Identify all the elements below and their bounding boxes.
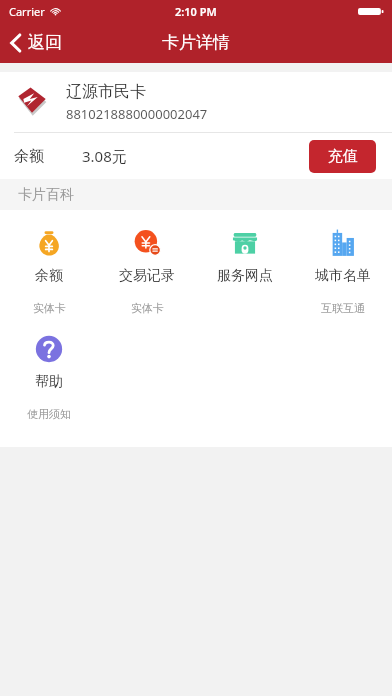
button[interactable]: 帮助 <box>0 332 98 423</box>
button[interactable]: 返回 <box>0 22 74 63</box>
staticText: 城市名单 <box>315 267 371 285</box>
button[interactable]: 充值 <box>309 140 376 173</box>
staticText: 8810218880000002047 <box>66 105 208 123</box>
staticText: 服务网点 <box>217 267 273 285</box>
staticText: 返回 <box>28 32 62 53</box>
staticText: 卡片详情 <box>162 32 230 53</box>
staticText: 3.08元 <box>82 146 127 166</box>
other: 交易记录 <box>133 229 161 257</box>
staticText: 余额 <box>35 267 63 285</box>
button[interactable]: 服务网点 <box>196 226 294 318</box>
staticText: 实体卡 <box>33 301 66 315</box>
staticText: 实体卡 <box>131 301 164 315</box>
staticText: 互联互通 <box>321 301 365 315</box>
other: 余额 <box>35 229 63 257</box>
other: 帮助 <box>35 335 63 363</box>
staticText: 帮助 <box>35 373 63 391</box>
other: 城市名单 <box>329 229 357 257</box>
button[interactable]: 辽源市民卡 <box>0 72 392 132</box>
staticText: 余额 <box>14 147 44 166</box>
staticText: 交易记录 <box>119 267 175 285</box>
other: 服务网点 <box>231 229 259 257</box>
button[interactable]: 城市名单 <box>294 226 392 317</box>
staticText: 使用须知 <box>27 407 71 421</box>
staticText: 卡片百科 <box>18 186 74 204</box>
button[interactable]: 余额 <box>0 226 98 317</box>
button[interactable]: 交易记录 <box>98 226 196 317</box>
staticText: 充值 <box>328 147 358 166</box>
staticText: Carrier <box>9 4 45 19</box>
staticText: 2:10 PM <box>175 4 217 19</box>
staticText: 辽源市民卡 <box>66 82 146 102</box>
